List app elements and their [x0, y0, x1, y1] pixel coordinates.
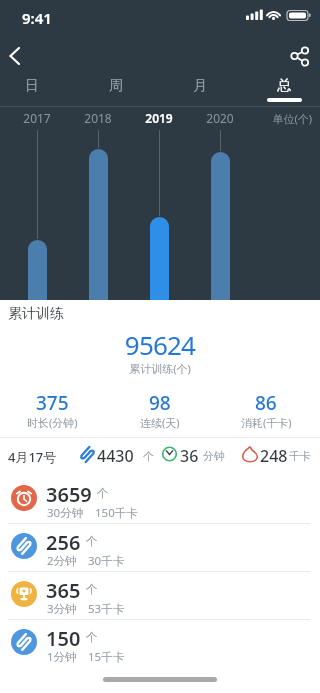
- staticText: 连续(天): [140, 415, 180, 430]
- staticText: 3分钟: [47, 601, 77, 617]
- button[interactable]: 日: [11, 74, 53, 98]
- staticText: 分钟: [203, 449, 225, 463]
- staticText: 150千卡: [95, 505, 138, 521]
- button[interactable]: 3659: [0, 474, 320, 520]
- staticText: 36: [180, 445, 199, 467]
- staticText: 248: [260, 445, 288, 467]
- staticText: 2分钟: [47, 553, 77, 569]
- button[interactable]: 365: [0, 570, 320, 616]
- staticText: 2018: [73, 110, 123, 126]
- staticText: 53千卡: [88, 601, 125, 617]
- staticText: 个: [86, 534, 98, 548]
- staticText: 2019: [134, 110, 184, 126]
- staticText: 2017: [12, 110, 62, 126]
- staticText: 周: [109, 77, 123, 95]
- staticText: 个: [86, 630, 98, 644]
- staticText: 日: [25, 77, 39, 95]
- staticText: 30千卡: [88, 553, 125, 569]
- staticText: 个: [86, 582, 98, 596]
- staticText: 375: [36, 390, 69, 416]
- staticText: 4月17号: [8, 448, 57, 466]
- staticText: 150: [46, 625, 81, 652]
- button[interactable]: 月: [179, 74, 221, 98]
- staticText: 95624: [0, 327, 320, 362]
- button[interactable]: 总: [263, 74, 305, 98]
- staticText: 消耗(千卡): [241, 415, 292, 430]
- staticText: 4430: [97, 445, 134, 467]
- staticText: 个: [97, 486, 109, 500]
- button[interactable]: 256: [0, 522, 320, 568]
- button[interactable]: [284, 42, 314, 72]
- button[interactable]: 周: [95, 74, 137, 98]
- staticText: 总: [277, 77, 291, 95]
- staticText: 15千卡: [88, 649, 125, 665]
- staticText: 时长(分钟): [27, 415, 78, 430]
- staticText: 个: [143, 449, 154, 463]
- staticText: 365: [46, 577, 81, 604]
- button[interactable]: 150: [0, 618, 320, 664]
- staticText: 9:41: [22, 8, 52, 28]
- staticText: 累计训练(个): [0, 361, 320, 376]
- button[interactable]: [2, 42, 34, 74]
- staticText: 3659: [46, 481, 92, 508]
- staticText: 累计训练: [8, 305, 64, 323]
- staticText: 月: [193, 77, 207, 95]
- staticText: 86: [255, 390, 277, 416]
- staticText: 千卡: [289, 449, 311, 463]
- staticText: 30分钟: [47, 505, 84, 521]
- button[interactable]: 4月17号: [0, 440, 320, 467]
- staticText: 单位(个): [242, 111, 312, 126]
- staticText: 256: [46, 529, 81, 556]
- staticText: 98: [149, 390, 171, 416]
- staticText: 2020: [195, 110, 245, 126]
- staticText: 1分钟: [47, 649, 77, 665]
